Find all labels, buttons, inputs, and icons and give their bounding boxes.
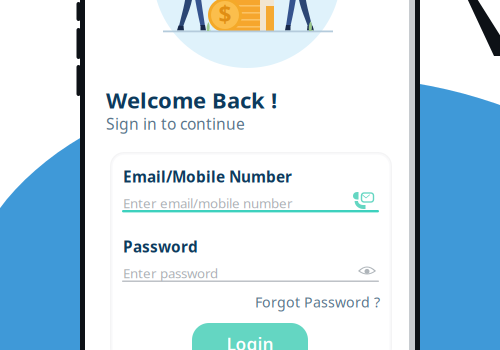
- staticText: Enter email/mobile number: [123, 194, 293, 212]
- staticText: Login: [226, 332, 273, 350]
- staticText: Email/Mobile Number: [123, 166, 292, 187]
- button[interactable]: Forgot Password ?: [184, 167, 316, 183]
- staticText: Forgot Password ?: [255, 292, 380, 312]
- staticText: Password: [123, 236, 198, 257]
- staticText: Welcome Back !: [106, 85, 277, 115]
- staticText: Sign in to continue: [106, 113, 245, 134]
- staticText: $: [218, 0, 231, 29]
- staticText: Enter password: [123, 264, 218, 282]
- button[interactable]: Login: [192, 152, 308, 198]
